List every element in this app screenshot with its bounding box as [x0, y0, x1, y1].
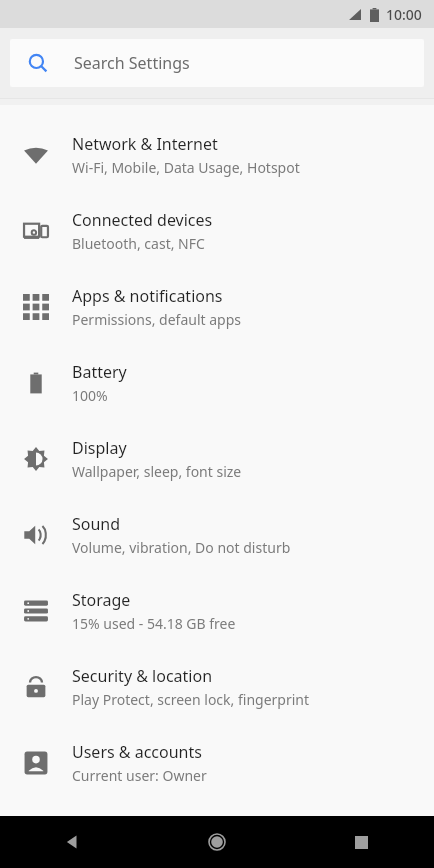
staticText: Security & location	[72, 665, 213, 687]
button[interactable]: Users & accounts	[0, 725, 434, 801]
staticText: 100%	[72, 386, 108, 405]
button[interactable]: Security & location	[0, 649, 434, 725]
staticText: Display	[72, 437, 127, 459]
staticText: Wallpaper, sleep, font size	[72, 462, 242, 481]
button[interactable]: Search	[10, 39, 424, 87]
button[interactable]: Apps & notifications	[0, 269, 434, 345]
staticText: Permissions, default apps	[72, 310, 242, 329]
button[interactable]: Connected devices	[0, 193, 434, 269]
staticText: 10:00	[386, 5, 422, 24]
button[interactable]: Back	[0, 816, 144, 868]
staticText: Sound	[72, 513, 121, 535]
staticText: Network & Internet	[72, 133, 218, 155]
button[interactable]: Home	[144, 816, 289, 868]
button[interactable]: Display	[0, 421, 434, 497]
staticText: Users & accounts	[72, 741, 202, 763]
button[interactable]: Network & Internet	[0, 117, 434, 193]
staticText: 15% used - 54.18 GB free	[72, 614, 236, 633]
staticText: Play Protect, screen lock, fingerprint	[72, 690, 310, 709]
staticText: Storage	[72, 589, 131, 611]
staticText: Current user: Owner	[72, 766, 207, 785]
staticText: Wi-Fi, Mobile, Data Usage, Hotspot	[72, 158, 300, 177]
staticText: Connected devices	[72, 209, 213, 231]
staticText: Apps & notifications	[72, 285, 223, 307]
button[interactable]: Recent apps	[289, 816, 434, 868]
other: Search	[28, 53, 48, 73]
staticText: Battery	[72, 361, 127, 383]
button[interactable]: Storage	[0, 573, 434, 649]
staticText: Bluetooth, cast, NFC	[72, 234, 205, 253]
staticText: Search Settings	[74, 52, 190, 74]
button[interactable]: Sound	[0, 497, 434, 573]
button[interactable]: Battery	[0, 345, 434, 421]
staticText: Volume, vibration, Do not disturb	[72, 538, 291, 557]
